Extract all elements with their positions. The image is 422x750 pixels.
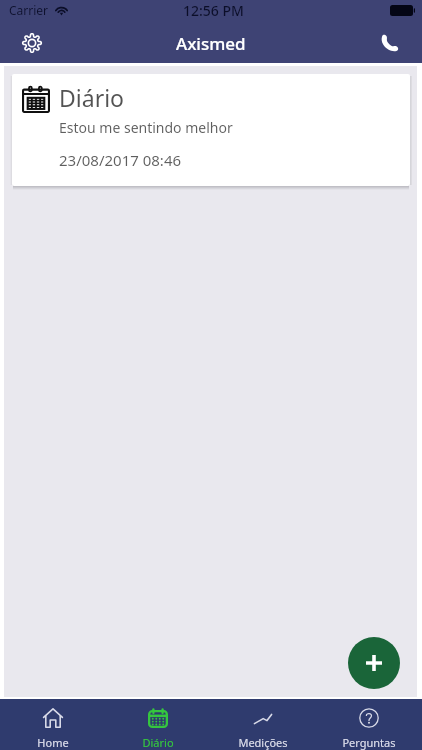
button[interactable]: Add new entry: [348, 637, 400, 689]
button[interactable]: Call: [371, 24, 409, 62]
staticText: Carrier: [9, 2, 49, 18]
staticText: Diário: [142, 735, 174, 750]
button[interactable]: Settings: [13, 24, 51, 62]
staticText: Home: [37, 735, 69, 750]
staticText: 12:56 PM: [183, 1, 244, 20]
staticText: Perguntas: [342, 735, 396, 750]
staticText: Medições: [238, 735, 288, 750]
button[interactable]: Diário: [12, 74, 410, 186]
staticText: Diário: [59, 82, 124, 113]
button[interactable]: Home: [0, 699, 105, 750]
staticText: Axismed: [176, 32, 246, 55]
button[interactable]: Medições: [210, 699, 316, 750]
staticText: Estou me sentindo melhor: [59, 118, 233, 137]
staticText: 23/08/2017 08:46: [59, 150, 182, 170]
button[interactable]: Diário: [105, 699, 210, 750]
button[interactable]: Perguntas: [316, 699, 422, 750]
